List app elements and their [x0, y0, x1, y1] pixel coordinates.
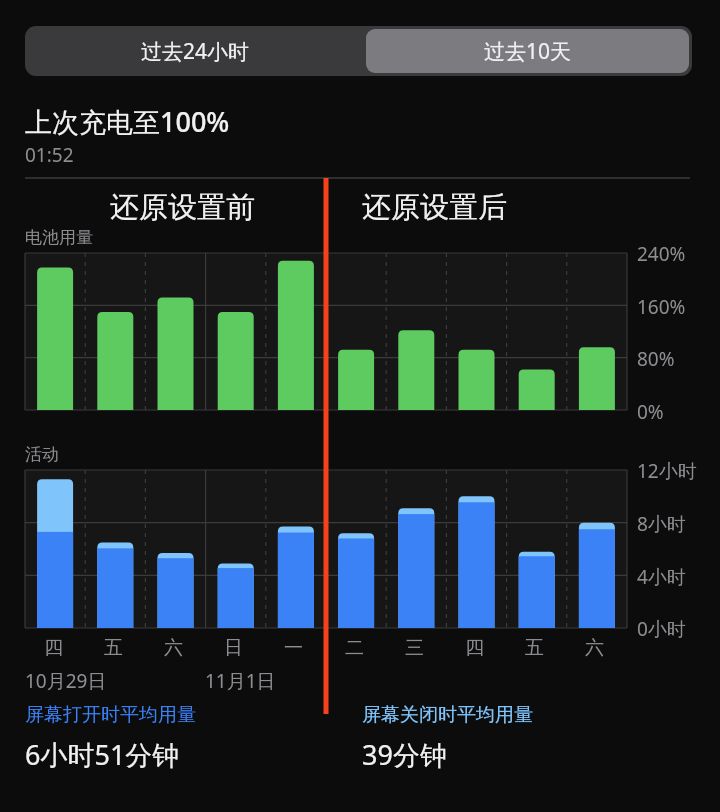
- staticText: 一: [284, 636, 303, 660]
- staticText: 五: [525, 636, 544, 660]
- staticText: 过去24小时: [141, 37, 250, 66]
- staticText: 11月1日: [205, 668, 276, 694]
- staticText: 01:52: [25, 142, 74, 168]
- staticText: 4小时: [637, 564, 686, 590]
- staticText: 六: [164, 636, 183, 660]
- staticText: 上次充电至100%: [25, 103, 230, 140]
- staticText: 还原设置后: [362, 189, 507, 226]
- staticText: 六: [585, 636, 604, 660]
- staticText: 屏幕关闭时平均用量: [362, 703, 533, 727]
- staticText: 过去10天: [484, 37, 572, 66]
- staticText: 160%: [637, 294, 686, 320]
- staticText: 四: [44, 636, 63, 660]
- staticText: 6小时51分钟: [25, 736, 180, 773]
- staticText: 0%: [637, 399, 664, 425]
- staticText: 日: [224, 636, 243, 660]
- staticText: 电池用量: [25, 227, 93, 248]
- button[interactable]: 过去24小时: [25, 26, 366, 76]
- staticText: 四: [465, 636, 484, 660]
- staticText: 8小时: [637, 511, 686, 537]
- staticText: 10月29日: [25, 668, 107, 694]
- button[interactable]: 过去10天: [366, 29, 689, 73]
- staticText: 0小时: [637, 616, 686, 642]
- staticText: 二: [345, 636, 364, 660]
- staticText: 80%: [637, 346, 675, 372]
- staticText: 12小时: [637, 458, 697, 484]
- staticText: 五: [104, 636, 123, 660]
- staticText: 活动: [25, 444, 59, 465]
- staticText: 三: [405, 636, 424, 660]
- staticText: 240%: [637, 241, 686, 267]
- staticText: 还原设置前: [110, 189, 255, 226]
- staticText: 屏幕打开时平均用量: [25, 703, 196, 727]
- staticText: 39分钟: [362, 736, 447, 773]
